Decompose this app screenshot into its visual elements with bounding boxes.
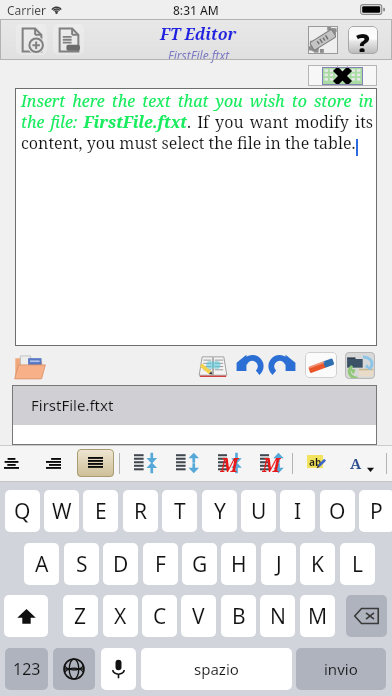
staticText: R <box>134 497 148 526</box>
button[interactable]: O <box>320 490 355 532</box>
button[interactable]: Justify <box>77 449 114 477</box>
staticText: A <box>350 453 362 473</box>
button[interactable]: Redo <box>267 350 296 379</box>
button[interactable]: spazio <box>141 648 292 690</box>
staticText: E <box>95 497 107 526</box>
button[interactable]: Decrease line spacing <box>131 448 160 478</box>
button[interactable]: I <box>280 490 315 532</box>
staticText: 123 <box>13 658 41 680</box>
button[interactable]: E <box>83 490 118 532</box>
button[interactable]: A <box>24 543 59 585</box>
button[interactable]: K <box>300 543 335 585</box>
button[interactable]: Open folder <box>14 352 46 380</box>
button[interactable]: J <box>261 543 296 585</box>
button[interactable]: Q <box>5 490 40 532</box>
staticText: spazio <box>194 659 239 679</box>
button[interactable]: F <box>143 543 178 585</box>
button[interactable]: M <box>300 595 335 637</box>
staticText: 8:31 AM <box>173 2 219 18</box>
staticText: W <box>52 497 72 526</box>
button[interactable]: Erase all <box>305 352 337 378</box>
staticText: T <box>174 497 186 526</box>
staticText: L <box>352 550 364 579</box>
staticText: ab <box>309 455 322 468</box>
staticText: invio <box>324 659 358 679</box>
staticText: A <box>35 550 49 579</box>
button[interactable]: Next keyboard <box>53 648 95 690</box>
staticText: K <box>311 550 324 579</box>
button[interactable]: Export to PDF <box>308 26 338 54</box>
staticText: M <box>262 452 281 474</box>
staticText: H <box>231 550 247 579</box>
button[interactable]: Shift <box>4 595 48 637</box>
staticText: B <box>232 602 246 631</box>
button[interactable]: P <box>359 490 392 532</box>
staticText: F <box>155 550 166 579</box>
staticText: J <box>276 550 282 579</box>
button[interactable]: Spell check <box>304 448 332 478</box>
staticText: M <box>220 452 239 474</box>
button[interactable]: Backspace <box>346 595 387 637</box>
button[interactable]: Dictation <box>101 648 136 690</box>
staticText: I <box>294 497 302 526</box>
button[interactable]: T <box>162 490 197 532</box>
staticText: Carrier <box>7 2 47 18</box>
button[interactable]: U <box>241 490 276 532</box>
staticText: X <box>114 602 127 631</box>
staticText: O <box>329 497 346 526</box>
staticText: M <box>308 602 328 631</box>
staticText: Insert here the text that you wish to st… <box>21 90 373 154</box>
button[interactable]: Increase line spacing <box>173 448 202 478</box>
staticText: Q <box>14 497 31 526</box>
staticText: ? <box>356 26 370 52</box>
button[interactable]: Undo <box>236 350 265 379</box>
staticText: FirstFile.ftxt <box>168 47 230 63</box>
staticText: P <box>370 497 383 526</box>
button[interactable]: R <box>123 490 158 532</box>
button[interactable]: New file <box>16 24 47 55</box>
button[interactable]: C <box>142 595 177 637</box>
button[interactable]: S <box>64 543 99 585</box>
button[interactable]: Hide keyboard <box>308 65 377 86</box>
button[interactable]: Restore <box>345 352 375 379</box>
button[interactable]: invio <box>296 648 386 690</box>
button[interactable]: V <box>181 595 216 637</box>
button[interactable]: Text color <box>347 448 375 478</box>
button[interactable]: Align center <box>0 449 23 479</box>
button[interactable]: Z <box>63 595 98 637</box>
button[interactable]: Dictionary <box>198 352 228 379</box>
staticText: S <box>76 550 88 579</box>
staticText: V <box>192 602 205 631</box>
staticText: FirstFile.ftxt <box>31 395 114 415</box>
staticText: Z <box>74 602 87 631</box>
staticText: D <box>113 550 129 579</box>
button[interactable]: Increase font size <box>258 448 287 478</box>
staticText: N <box>270 602 286 631</box>
staticText: U <box>251 497 267 526</box>
button[interactable]: B <box>221 595 256 637</box>
staticText: G <box>192 550 208 579</box>
button[interactable]: Y <box>202 490 237 532</box>
button[interactable]: Align right <box>38 449 69 479</box>
button[interactable]: 123 <box>5 648 48 690</box>
button[interactable]: Help <box>348 26 378 54</box>
button[interactable]: N <box>260 595 295 637</box>
button[interactable]: H <box>221 543 256 585</box>
staticText: FT Editor <box>160 23 237 45</box>
button[interactable]: W <box>44 490 79 532</box>
button[interactable]: FirstFile.ftxt <box>12 385 377 425</box>
button[interactable]: X <box>103 595 138 637</box>
button[interactable]: L <box>340 543 375 585</box>
button[interactable]: G <box>182 543 217 585</box>
button[interactable]: Open PDF <box>53 24 84 55</box>
staticText: Y <box>214 497 226 526</box>
staticText: C <box>153 602 167 631</box>
button[interactable]: D <box>103 543 138 585</box>
button[interactable]: Decrease font size <box>216 448 245 478</box>
